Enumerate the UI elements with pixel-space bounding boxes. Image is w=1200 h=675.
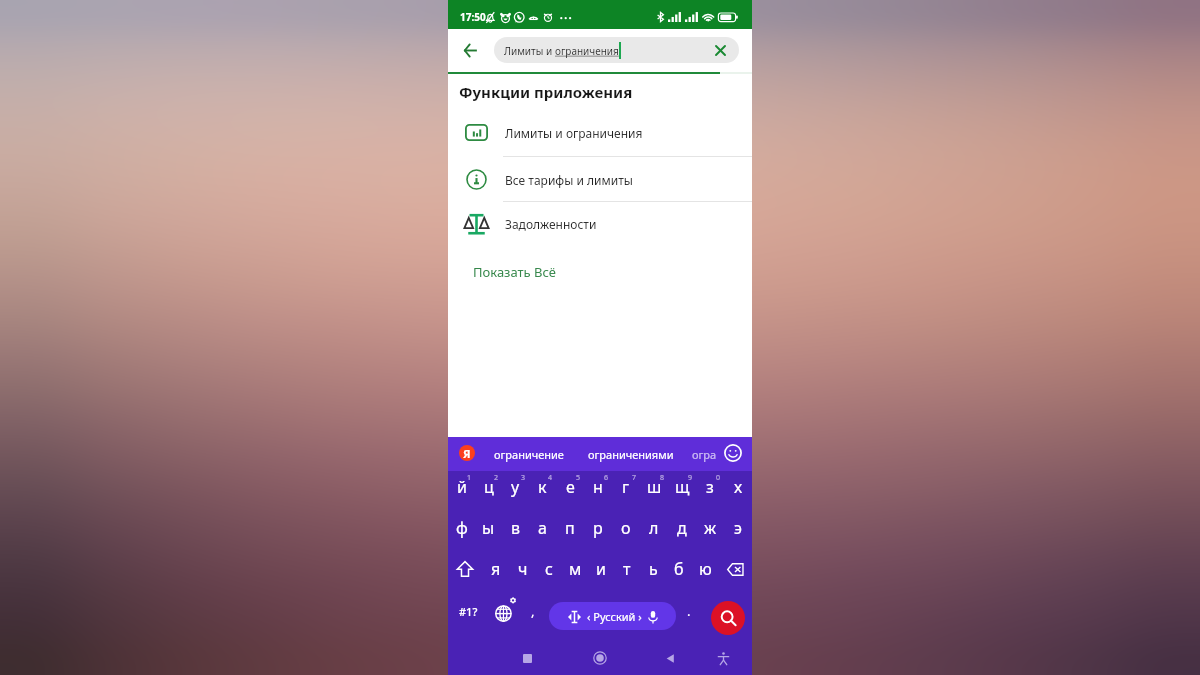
button[interactable]: Yandex: [459, 445, 475, 461]
staticText: п: [565, 517, 575, 539]
staticText: х: [734, 476, 743, 498]
staticText: у: [511, 476, 520, 498]
staticText: я: [491, 558, 501, 580]
button[interactable]: Emoji: [723, 443, 743, 463]
button[interactable]: Back: [454, 34, 487, 67]
staticText: с: [545, 558, 553, 580]
button[interactable]: ь: [640, 548, 666, 590]
staticText: р: [593, 517, 603, 539]
staticText: 0: [716, 473, 721, 483]
staticText: 5: [576, 473, 581, 483]
staticText: н: [593, 476, 603, 498]
button[interactable]: а: [529, 507, 556, 549]
staticText: Функции приложения: [459, 82, 633, 102]
button[interactable]: ,: [526, 590, 540, 632]
staticText: ц: [484, 476, 494, 498]
button[interactable]: 9: [668, 466, 696, 508]
button[interactable]: #1?: [456, 590, 480, 632]
staticText: л: [649, 517, 659, 539]
staticText: Все тарифы и лимиты: [505, 172, 633, 188]
button[interactable]: ю: [692, 548, 718, 590]
button[interactable]: т: [614, 548, 640, 590]
staticText: з: [706, 476, 714, 498]
button[interactable]: огра: [692, 447, 717, 462]
staticText: е: [566, 476, 575, 498]
button[interactable]: 2: [475, 466, 502, 508]
staticText: и: [596, 558, 606, 580]
button[interactable]: п: [556, 507, 584, 549]
button[interactable]: ж: [696, 507, 724, 549]
staticText: 17:50: [460, 10, 486, 24]
button[interactable]: Recents: [518, 649, 536, 667]
button[interactable]: м: [562, 548, 588, 590]
button[interactable]: б: [666, 548, 692, 590]
button[interactable]: о: [612, 507, 640, 549]
button[interactable]: ограничениями: [588, 447, 674, 462]
button[interactable]: д: [668, 507, 696, 549]
staticText: а: [538, 517, 547, 539]
staticText: ю: [699, 558, 712, 580]
button[interactable]: Back: [661, 649, 679, 667]
staticText: й: [457, 476, 467, 498]
staticText: Показать Всё: [473, 263, 556, 281]
staticText: ы: [482, 517, 495, 539]
button[interactable]: р: [584, 507, 612, 549]
staticText: т: [623, 558, 631, 580]
button[interactable]: ф: [448, 507, 475, 549]
staticText: 8: [660, 473, 665, 483]
button[interactable]: и: [588, 548, 614, 590]
button[interactable]: э: [724, 507, 752, 549]
button[interactable]: ‹ Русский ›: [549, 602, 676, 630]
staticText: 3: [521, 473, 526, 483]
button[interactable]: Лимиты и ограничения: [448, 110, 752, 155]
staticText: .: [687, 602, 691, 620]
staticText: ш: [647, 476, 662, 498]
button[interactable]: с: [536, 548, 562, 590]
button[interactable]: Home: [591, 649, 609, 667]
staticText: г: [622, 476, 630, 498]
staticText: ж: [704, 517, 717, 539]
button[interactable]: х: [724, 466, 752, 508]
staticText: о: [621, 517, 631, 539]
button[interactable]: в: [502, 507, 529, 549]
button[interactable]: я: [482, 548, 509, 590]
staticText: 4: [548, 473, 553, 483]
staticText: 6: [604, 473, 609, 483]
staticText: в: [511, 517, 521, 539]
staticText: 2: [494, 473, 499, 483]
staticText: 7: [632, 473, 637, 483]
staticText: ч: [518, 558, 528, 580]
button[interactable]: 0: [696, 466, 724, 508]
button[interactable]: Search: [711, 601, 745, 635]
button[interactable]: 1: [448, 466, 475, 508]
button[interactable]: Backspace: [718, 548, 752, 590]
button[interactable]: ы: [475, 507, 502, 549]
staticText: #1?: [459, 604, 478, 619]
button[interactable]: .: [682, 590, 696, 632]
button[interactable]: Показать Всё: [448, 254, 752, 290]
button[interactable]: Shift: [448, 548, 482, 590]
staticText: ,: [531, 602, 535, 620]
button[interactable]: 8: [640, 466, 668, 508]
staticText: б: [674, 558, 684, 580]
button[interactable]: ограничение: [494, 447, 564, 462]
button[interactable]: 7: [612, 466, 640, 508]
button[interactable]: Change keyboard language: [490, 590, 520, 632]
button[interactable]: Задолженности: [448, 202, 752, 246]
staticText: Лимиты и ограничения: [505, 125, 643, 141]
staticText: 9: [688, 473, 693, 483]
button[interactable]: Accessibility: [714, 649, 732, 667]
button[interactable]: л: [640, 507, 668, 549]
button[interactable]: 4: [529, 466, 556, 508]
staticText: 1: [467, 473, 472, 483]
button[interactable]: 6: [584, 466, 612, 508]
button[interactable]: 3: [502, 466, 529, 508]
button[interactable]: 5: [556, 466, 584, 508]
staticText: ф: [456, 517, 468, 539]
staticText: м: [569, 558, 582, 580]
button[interactable]: Лимиты и: [494, 37, 739, 63]
button[interactable]: Все тарифы и лимиты: [448, 157, 752, 202]
staticText: ь: [649, 558, 658, 580]
button[interactable]: Clear text: [708, 38, 732, 62]
button[interactable]: ч: [509, 548, 536, 590]
